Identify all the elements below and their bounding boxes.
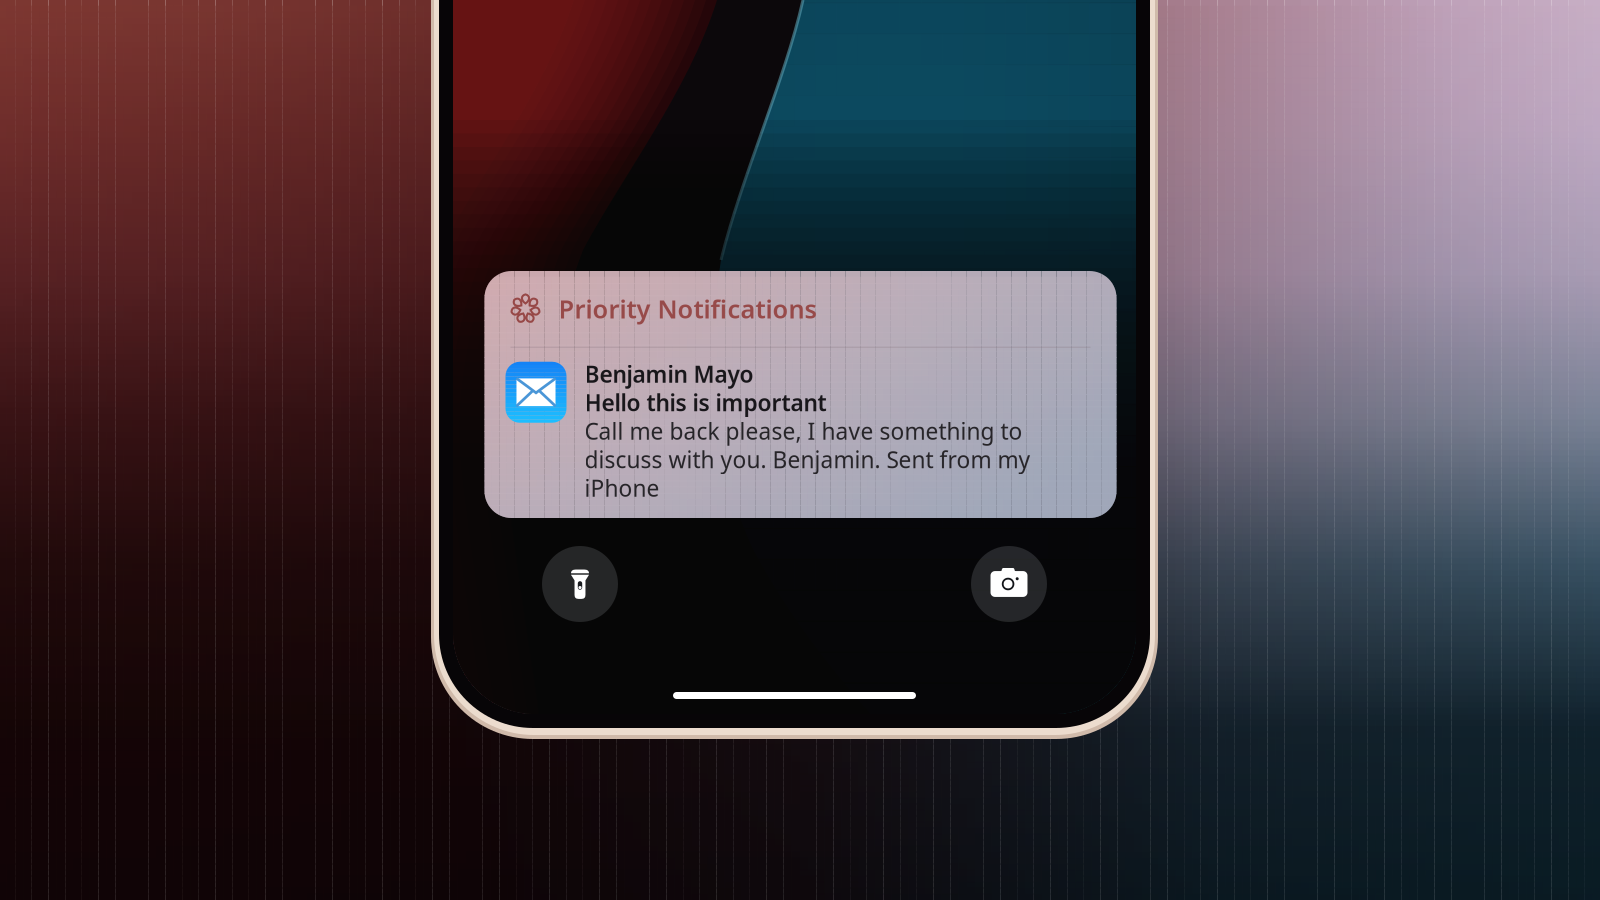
staticText: Priority Notifications [558, 292, 816, 325]
button[interactable]: Flashlight [542, 546, 618, 622]
button[interactable]: Camera [971, 546, 1047, 622]
staticText: Hello this is important [584, 387, 826, 417]
staticText: iPhone [584, 473, 659, 503]
staticText: discuss with you. Benjamin. Sent from my [584, 444, 1030, 474]
staticText: Benjamin Mayo [584, 359, 753, 389]
staticText: Call me back please, I have something to [584, 416, 1022, 446]
